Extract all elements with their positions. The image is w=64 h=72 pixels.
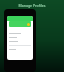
staticText: Manage Profiles: [18, 3, 46, 8]
button[interactable]: [7, 16, 33, 21]
button[interactable]: Manage Profiles: [0, 0, 64, 10]
button[interactable]: [9, 21, 31, 27]
